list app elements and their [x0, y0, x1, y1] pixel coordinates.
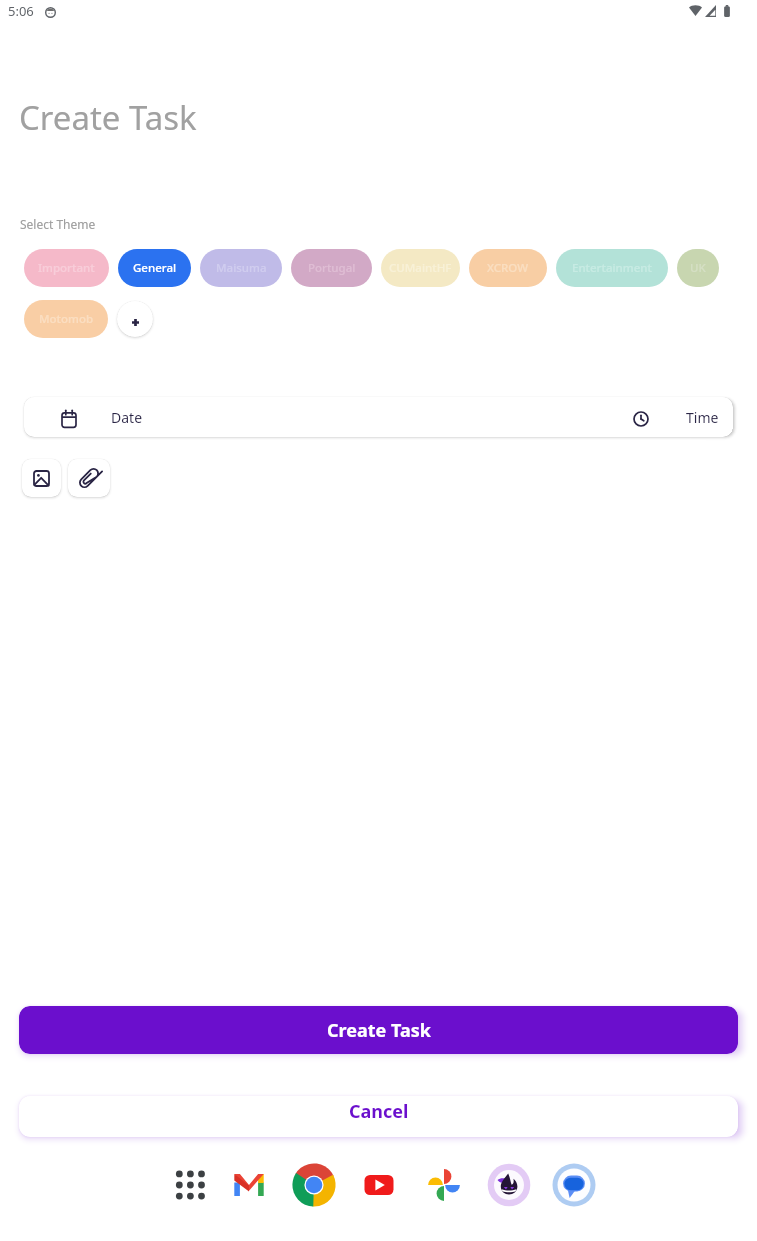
- button[interactable]: YouTube: [346, 1162, 411, 1208]
- button[interactable]: Add theme: [117, 301, 153, 337]
- staticText: General: [133, 260, 177, 276]
- button[interactable]: Add image: [22, 459, 61, 497]
- button[interactable]: Create Task: [19, 1006, 738, 1054]
- button[interactable]: Maisuma: [200, 249, 282, 287]
- button[interactable]: Zedge: [476, 1162, 541, 1208]
- staticText: Portugal: [308, 260, 356, 276]
- staticText: CUMaintHF: [389, 260, 452, 276]
- staticText: Date: [111, 408, 143, 427]
- button[interactable]: All apps: [151, 1162, 216, 1208]
- staticText: Entertainment: [572, 260, 652, 276]
- staticText: Maisuma: [216, 260, 267, 276]
- staticText: Create Task: [19, 95, 197, 140]
- button[interactable]: Photos: [411, 1162, 476, 1208]
- button[interactable]: Date: [24, 408, 143, 427]
- button[interactable]: Gmail: [216, 1162, 281, 1208]
- button[interactable]: UK: [677, 249, 719, 287]
- button[interactable]: Attach file: [68, 459, 110, 497]
- staticText: Create Task: [327, 1018, 431, 1043]
- button[interactable]: Time: [633, 408, 733, 427]
- button[interactable]: Portugal: [291, 249, 372, 287]
- staticText: 5:06: [8, 2, 34, 20]
- button[interactable]: XCROW: [469, 249, 547, 287]
- staticText: Time: [686, 408, 719, 427]
- button[interactable]: Entertainment: [556, 249, 668, 287]
- button[interactable]: Cancel: [19, 1096, 738, 1137]
- button[interactable]: Important: [24, 249, 109, 287]
- staticText: Important: [38, 260, 95, 276]
- button[interactable]: General: [118, 249, 191, 287]
- button[interactable]: CUMaintHF: [381, 249, 460, 287]
- staticText: Cancel: [349, 1099, 409, 1124]
- button[interactable]: Chrome: [281, 1162, 346, 1208]
- button[interactable]: Messages: [541, 1162, 606, 1208]
- button[interactable]: Motomob: [24, 300, 108, 338]
- staticText: XCROW: [487, 260, 529, 276]
- staticText: Motomob: [39, 311, 94, 327]
- staticText: Select Theme: [20, 216, 96, 232]
- staticText: UK: [690, 260, 706, 276]
